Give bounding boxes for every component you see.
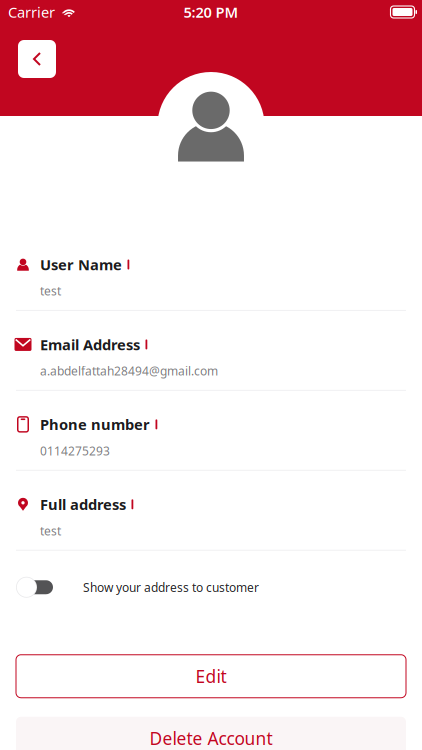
staticText: Delete Account bbox=[149, 727, 272, 750]
staticText: Carrier bbox=[8, 2, 55, 22]
button[interactable]: Delete Account bbox=[16, 717, 406, 750]
button[interactable]: Show your address to customer bbox=[16, 576, 54, 599]
staticText: Full address bbox=[40, 495, 126, 514]
staticText: test bbox=[40, 523, 61, 539]
staticText: 5:20 PM bbox=[183, 2, 238, 22]
staticText: User Name bbox=[40, 255, 122, 274]
button[interactable]: Edit bbox=[16, 655, 406, 698]
button[interactable]: Back bbox=[18, 40, 56, 78]
staticText: a.abdelfattah28494@gmail.com bbox=[40, 363, 218, 379]
staticText: Phone number bbox=[40, 415, 150, 434]
staticText: Edit bbox=[195, 665, 226, 688]
staticText: Show your address to customer bbox=[83, 579, 259, 595]
staticText: test bbox=[40, 283, 61, 299]
staticText: Email Address bbox=[40, 335, 140, 354]
staticText: 0114275293 bbox=[40, 443, 110, 459]
